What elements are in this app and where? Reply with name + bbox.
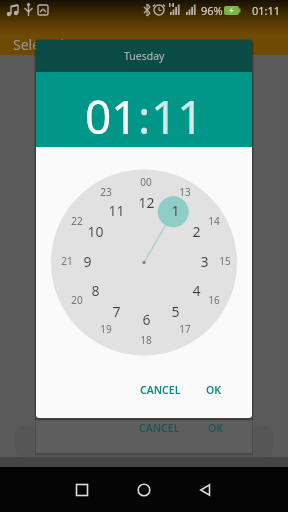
staticText: 20 [71,293,83,307]
staticText: 7 [112,302,121,321]
staticText: 22 [71,214,83,228]
staticText: 3 [200,252,209,271]
button[interactable] [132,478,156,502]
staticText: Select tim [13,35,78,54]
staticText: CANCEL [140,383,181,397]
staticText: 16 [208,293,220,307]
staticText: 6 [142,310,151,329]
staticText: 12 [138,193,155,212]
staticText: 11 [151,85,204,148]
staticText: 4 [192,281,201,300]
staticText: 2 [192,222,201,241]
button[interactable]: CANCEL [132,375,189,405]
staticText: 00 [140,175,152,189]
staticText: 10 [87,222,104,241]
staticText: 11 [108,201,125,220]
staticText: 14 [208,214,220,228]
staticText: 13 [179,185,191,199]
staticText: 96% [201,3,223,18]
staticText: 01 [85,85,138,148]
staticText: 17 [179,322,191,336]
staticText: 23 [100,185,112,199]
staticText: Tuesday [124,49,165,63]
staticText: CANCEL [139,421,180,435]
staticText: OK [208,421,224,435]
staticText: 5 [171,302,180,321]
staticText: 21 [61,254,73,268]
staticText: 15 [219,254,231,268]
staticText: 19 [100,322,112,336]
button[interactable] [70,478,94,502]
button[interactable] [193,478,217,502]
staticText: 1 [171,201,180,220]
staticText: : [138,85,151,148]
staticText: 18 [140,333,152,347]
staticText: 9 [83,252,92,271]
button[interactable]: OK [198,375,230,405]
staticText: 01:11 [252,3,281,18]
staticText: OK [206,383,222,397]
staticText: 8 [91,281,100,300]
